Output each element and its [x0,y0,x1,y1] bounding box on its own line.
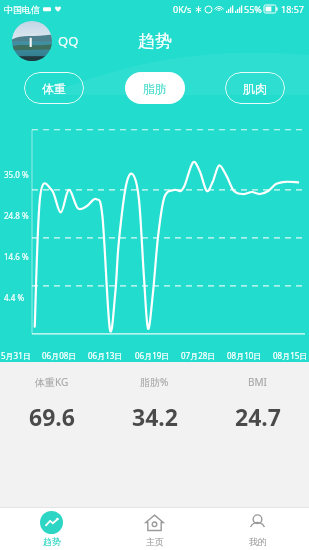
staticText: 我的 [249,536,267,547]
staticText: QQ [58,32,79,50]
staticText: 55% [244,3,262,15]
staticText: 18:57 [281,3,305,15]
staticText: 0K/s [173,3,192,15]
staticText: BMI [248,375,267,389]
staticText: 08月10日 [227,350,262,361]
staticText: 06月19日 [135,350,170,361]
staticText: 中国电信 [4,4,40,15]
button[interactable]: 我的 [206,511,309,547]
staticText: 14.6 % [4,251,29,262]
staticText: 脂肪% [140,375,169,389]
button[interactable]: 趋势 [0,511,103,547]
button[interactable]: 肌肉 [225,72,285,104]
staticText: 34.2 [132,401,178,432]
staticText: 08月15日 [273,350,308,361]
staticText: 趋势 [138,31,172,52]
staticText: 体重 [42,81,66,96]
button[interactable]: 主页 [103,511,206,547]
staticText: 脂肪 [143,81,167,96]
staticText: 69.6 [29,401,75,432]
button[interactable]: BMI [206,375,309,432]
button[interactable]: 体重KG [0,375,103,432]
button[interactable]: 脂肪% [103,375,206,432]
staticText: 趋势 [43,536,61,547]
staticText: 35.0 % [4,169,29,180]
staticText: 体重KG [35,375,69,389]
button[interactable]: 脂肪 [125,72,185,104]
staticText: 06月08日 [42,350,77,361]
button[interactable]: 体重 [24,72,84,104]
staticText: 4.4 % [4,292,25,303]
staticText: 06月13日 [88,350,123,361]
staticText: 24.7 [235,401,281,432]
staticText: 主页 [146,536,164,547]
staticText: 24.8 % [4,210,29,221]
staticText: 5月31日 [1,350,31,361]
staticText: 肌肉 [243,81,267,96]
staticText: 07月28日 [181,350,216,361]
button[interactable]: Profile avatar [12,21,52,61]
